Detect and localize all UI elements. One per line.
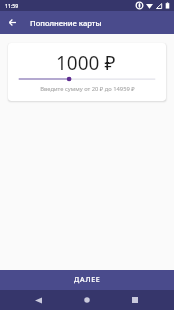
staticText: ДАЛЕЕ [74,275,101,285]
button[interactable]: Amount slider [8,75,166,83]
staticText: Пополнение карты [30,18,102,28]
staticText: Введите сумму от 20 ₽ до 14959 ₽ [40,85,135,93]
staticText: 1000 ₽ [56,50,116,76]
button[interactable]: Recent apps [125,290,145,310]
staticText: 11:59 [5,2,19,9]
button[interactable]: ДАЛЕЕ [0,270,174,290]
button[interactable]: Back [28,290,48,310]
button[interactable]: Home [77,290,97,310]
button[interactable]: Back [3,13,22,32]
